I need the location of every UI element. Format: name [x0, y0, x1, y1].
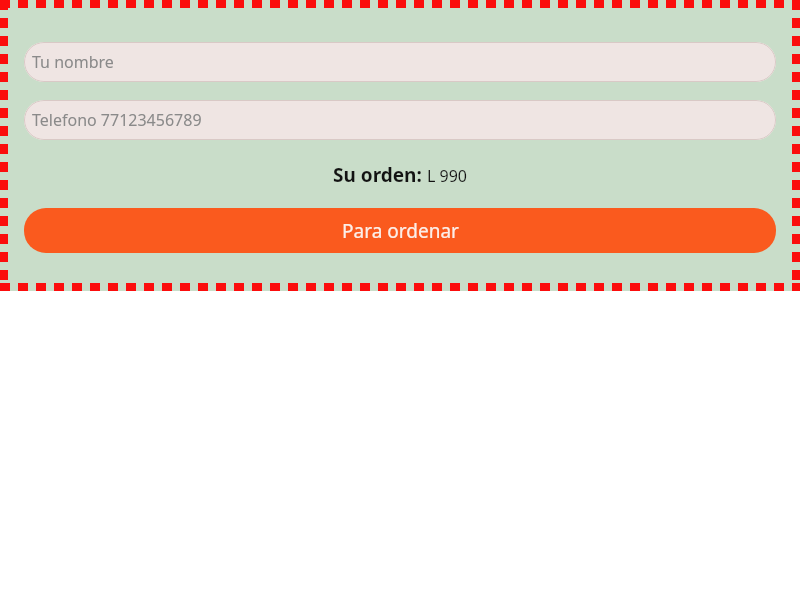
- button[interactable]: Tu nombre: [24, 42, 776, 82]
- staticText: Tu nombre: [32, 51, 114, 73]
- button[interactable]: Para ordenar: [24, 208, 776, 253]
- button[interactable]: Telefono 77123456789: [24, 100, 776, 140]
- staticText: L 990: [427, 165, 468, 187]
- staticText: Para ordenar: [342, 218, 459, 244]
- staticText: Telefono 77123456789: [32, 109, 202, 131]
- staticText: Su orden:: [333, 162, 422, 188]
